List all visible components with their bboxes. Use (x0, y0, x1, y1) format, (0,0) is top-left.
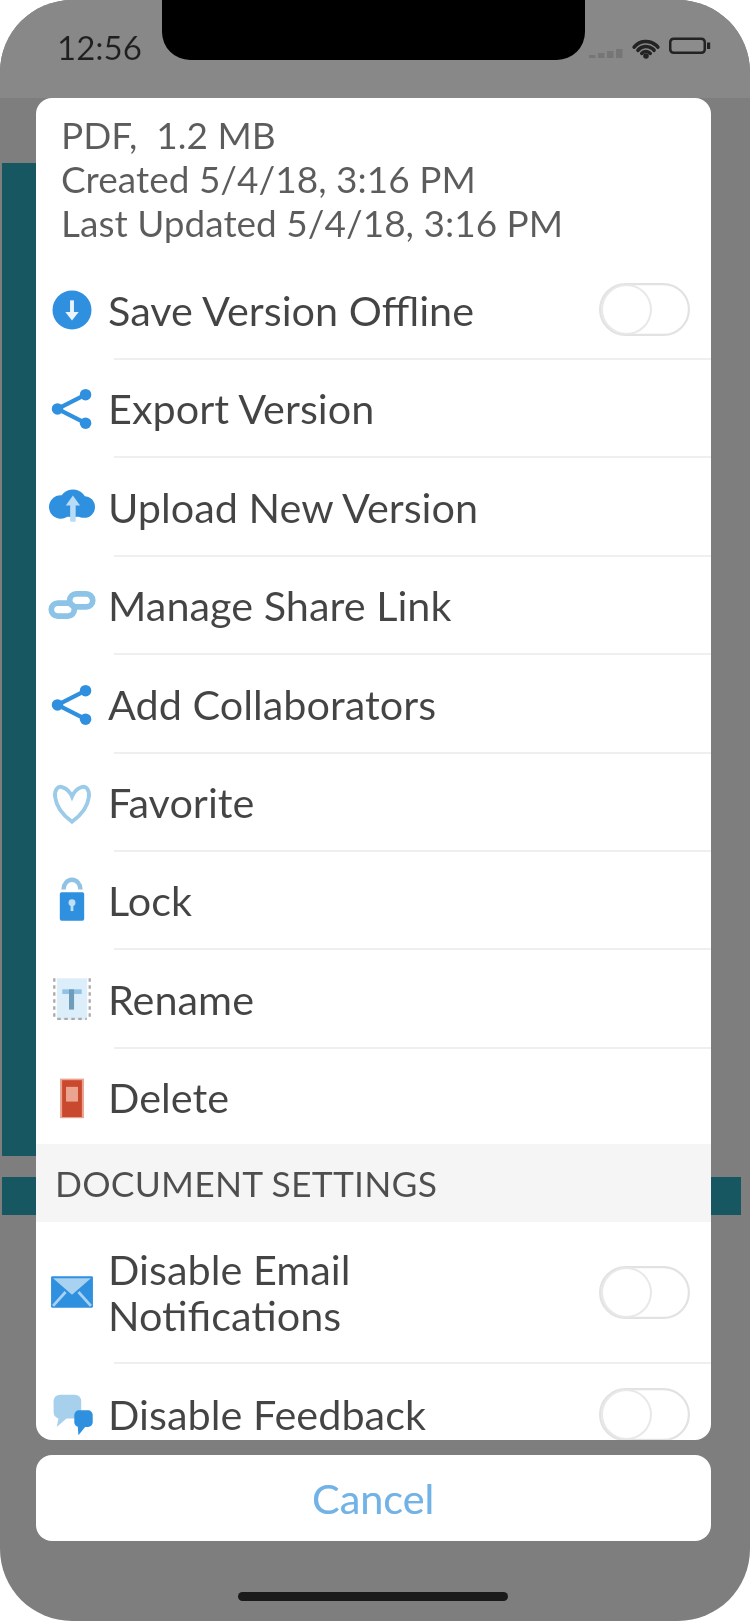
button[interactable]: Favorite (36, 754, 711, 850)
button[interactable]: Lock (36, 852, 711, 948)
button[interactable]: Save Version Offline (36, 261, 711, 358)
button[interactable]: Disable Email Notifications (36, 1222, 711, 1362)
button[interactable]: Rename (36, 950, 711, 1047)
button[interactable]: Disable Feedback (36, 1364, 711, 1440)
staticText: Lock (108, 875, 711, 925)
staticText: Upload New Version (108, 482, 711, 532)
button[interactable]: Export Version (36, 360, 711, 456)
staticText: Favorite (108, 777, 711, 827)
staticText: Disable Email Notifications (108, 1244, 599, 1340)
button[interactable]: Toggle (599, 1266, 690, 1319)
staticText: Disable Feedback (108, 1389, 599, 1439)
button[interactable]: Toggle (599, 1388, 690, 1440)
button[interactable]: Upload New Version (36, 458, 711, 555)
staticText: Delete (108, 1072, 711, 1122)
button[interactable]: Cancel (36, 1455, 711, 1541)
staticText: Add Collaborators (108, 679, 711, 729)
staticText: 12:56 (57, 27, 142, 67)
button[interactable]: Manage Share Link (36, 557, 711, 653)
staticText: Save Version Offline (108, 285, 599, 335)
staticText: Cancel (312, 1473, 435, 1523)
button[interactable]: Delete (36, 1049, 711, 1144)
staticText: Export Version (108, 383, 711, 433)
staticText: Created 5/4/18, 3:16 PM (61, 156, 476, 200)
button[interactable]: Add Collaborators (36, 655, 711, 752)
staticText: DOCUMENT SETTINGS (55, 1162, 438, 1205)
staticText: PDF, 1.2 MB (61, 112, 276, 156)
staticText: Rename (108, 974, 711, 1024)
staticText: Last Updated 5/4/18, 3:16 PM (61, 200, 564, 244)
staticText: Manage Share Link (108, 580, 711, 630)
button[interactable]: Toggle (599, 283, 690, 336)
